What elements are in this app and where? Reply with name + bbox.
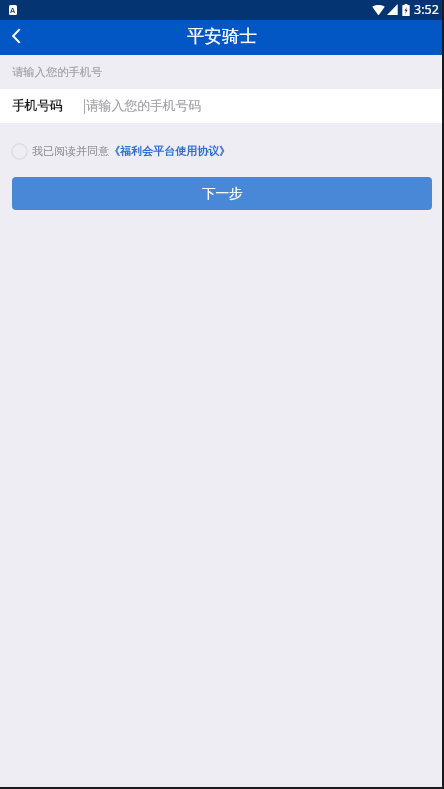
button[interactable]: 手机号码: [0, 89, 444, 123]
staticText: 请输入您的手机号码: [86, 98, 202, 114]
staticText: 请输入您的手机号: [12, 65, 103, 79]
staticText: 下一步: [202, 185, 243, 202]
button[interactable]: 我已阅读并同意: [0, 141, 444, 161]
staticText: 《福利会平台使用协议》: [109, 144, 230, 158]
staticText: 手机号码: [12, 98, 63, 114]
button[interactable]: Back: [0, 20, 30, 55]
staticText: 3:52: [414, 1, 439, 18]
staticText: A: [10, 5, 16, 15]
staticText: 我已阅读并同意: [32, 144, 109, 158]
staticText: 平安骑士: [187, 25, 257, 47]
button[interactable]: 下一步: [12, 177, 432, 210]
